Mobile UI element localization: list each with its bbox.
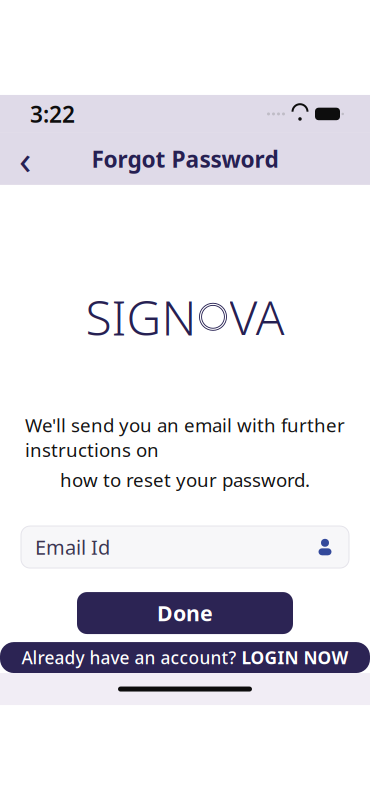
button[interactable]: Done [77,592,293,634]
staticText: LOGIN NOW [241,646,348,669]
staticText: We'll send you an email with further ins… [25,413,345,462]
staticText: Email Id [35,534,110,560]
staticText: SIGN [85,285,196,349]
button[interactable]: Email Id [21,526,349,568]
staticText: how to reset your password. [60,467,310,492]
staticText: Already have an account? [21,646,236,669]
button[interactable]: Already have an account? [0,642,370,673]
staticText: ‹ [19,132,31,185]
staticText: Done [157,599,213,627]
button[interactable]: Back [4,137,46,181]
staticText: Forgot Password [91,144,278,174]
staticText: 3:22 [30,99,75,129]
staticText: VA [229,285,284,349]
